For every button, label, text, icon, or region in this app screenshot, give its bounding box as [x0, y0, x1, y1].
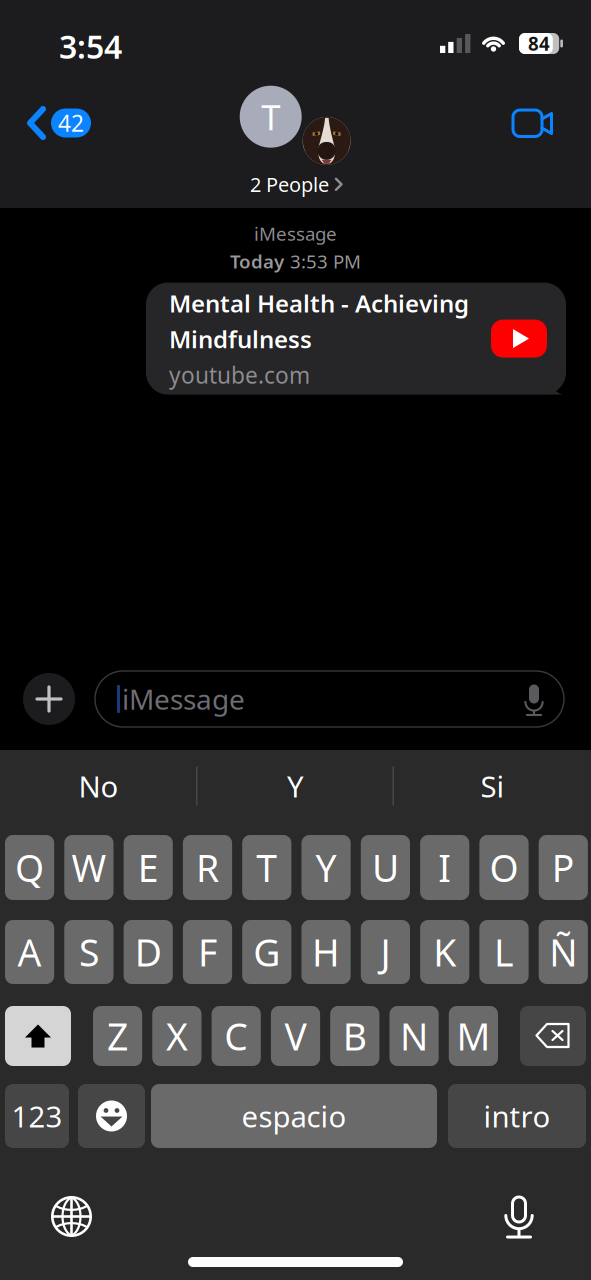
- button[interactable]: espacio: [151, 1084, 437, 1148]
- staticText: T: [261, 94, 280, 140]
- button[interactable]: T: [242, 835, 291, 900]
- staticText: W: [71, 843, 106, 892]
- button[interactable]: Add attachment: [23, 673, 75, 725]
- staticText: Y: [316, 843, 337, 892]
- button[interactable]: M: [449, 1006, 498, 1066]
- button[interactable]: intro: [448, 1084, 586, 1148]
- staticText: espacio: [241, 1096, 346, 1135]
- button[interactable]: P: [539, 835, 588, 900]
- button[interactable]: S: [64, 920, 113, 984]
- staticText: Q: [15, 843, 44, 892]
- button[interactable]: No: [0, 760, 197, 812]
- button[interactable]: N: [389, 1006, 439, 1066]
- button[interactable]: FaceTime video call: [499, 98, 568, 149]
- button[interactable]: Ñ: [539, 920, 588, 984]
- staticText: C: [224, 1011, 248, 1061]
- button[interactable]: U: [361, 835, 410, 900]
- button[interactable]: Shift: [5, 1006, 71, 1066]
- button[interactable]: 123: [5, 1084, 69, 1148]
- staticText: N: [400, 1011, 428, 1061]
- staticText: V: [284, 1011, 306, 1061]
- button[interactable]: F: [183, 920, 232, 984]
- staticText: J: [380, 927, 390, 977]
- staticText: iMessage: [254, 221, 337, 246]
- staticText: F: [198, 927, 217, 977]
- button[interactable]: W: [64, 835, 113, 900]
- staticText: intro: [483, 1096, 550, 1135]
- staticText: D: [135, 927, 162, 977]
- button[interactable]: C: [212, 1006, 261, 1066]
- staticText: G: [253, 927, 280, 977]
- staticText: X: [166, 1011, 188, 1061]
- staticText: P: [552, 843, 575, 892]
- staticText: 3:53 PM: [290, 249, 361, 274]
- staticText: 3:54: [59, 25, 122, 67]
- button[interactable]: A: [5, 920, 54, 984]
- button[interactable]: Dictate: [504, 1194, 534, 1239]
- staticText: 84: [528, 31, 550, 56]
- staticText: 123: [11, 1096, 62, 1135]
- button[interactable]: R: [183, 835, 232, 900]
- staticText: S: [79, 927, 99, 977]
- staticText: B: [343, 1011, 367, 1061]
- staticText: Y: [287, 766, 304, 805]
- staticText: iMessage: [122, 680, 245, 718]
- button[interactable]: X: [152, 1006, 201, 1066]
- button[interactable]: L: [479, 920, 529, 984]
- button[interactable]: I: [420, 835, 469, 900]
- staticText: U: [372, 843, 399, 892]
- staticText: Si: [480, 766, 504, 805]
- staticText: K: [433, 927, 456, 977]
- staticText: O: [489, 843, 518, 892]
- button[interactable]: Emoji: [78, 1084, 145, 1148]
- button[interactable]: iMessage: [95, 671, 564, 727]
- button[interactable]: Si: [394, 760, 591, 812]
- staticText: 42: [58, 108, 84, 138]
- staticText: M: [456, 1011, 490, 1061]
- button[interactable]: T: [236, 86, 354, 198]
- staticText: L: [494, 927, 514, 977]
- staticText: H: [312, 927, 340, 977]
- button[interactable]: Z: [93, 1006, 142, 1066]
- button[interactable]: O: [479, 835, 529, 900]
- staticText: Ñ: [549, 927, 577, 977]
- staticText: youtube.com: [169, 360, 310, 390]
- staticText: Mindfulness: [169, 323, 312, 355]
- button[interactable]: Q: [5, 835, 54, 900]
- button[interactable]: E: [124, 835, 173, 900]
- staticText: Today: [230, 249, 284, 274]
- staticText: Mental Health - Achieving: [169, 287, 469, 319]
- staticText: R: [196, 843, 219, 892]
- button[interactable]: V: [271, 1006, 320, 1066]
- staticText: A: [18, 927, 42, 977]
- button[interactable]: Y: [197, 760, 394, 812]
- button[interactable]: Next keyboard: [51, 1196, 92, 1237]
- staticText: T: [256, 843, 277, 892]
- button[interactable]: Delete: [520, 1006, 586, 1066]
- button[interactable]: J: [361, 920, 410, 984]
- staticText: No: [78, 766, 118, 805]
- staticText: I: [438, 843, 451, 892]
- button[interactable]: 42: [13, 97, 105, 149]
- button[interactable]: Y: [301, 835, 351, 900]
- staticText: 2 People: [250, 171, 329, 198]
- button[interactable]: D: [124, 920, 173, 984]
- button[interactable]: H: [301, 920, 351, 984]
- button[interactable]: G: [242, 920, 291, 984]
- staticText: E: [138, 843, 159, 892]
- staticText: Z: [107, 1011, 128, 1061]
- button[interactable]: B: [330, 1006, 379, 1066]
- button[interactable]: K: [420, 920, 469, 984]
